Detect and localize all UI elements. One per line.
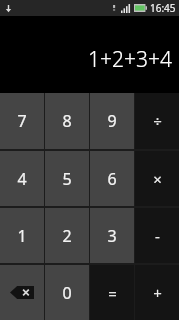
staticText: ÷: [153, 111, 162, 131]
staticText: =: [108, 283, 117, 303]
button[interactable]: =: [90, 265, 134, 320]
button[interactable]: 4: [0, 151, 44, 206]
staticText: 1: [17, 225, 27, 247]
staticText: 3: [107, 225, 117, 247]
button[interactable]: 8: [45, 93, 89, 149]
button[interactable]: 1: [0, 208, 44, 263]
button[interactable]: 9: [90, 93, 134, 149]
button[interactable]: Backspace: [0, 265, 44, 320]
button[interactable]: 5: [45, 151, 89, 206]
button[interactable]: 3: [90, 208, 134, 263]
button[interactable]: 0: [45, 265, 89, 320]
button[interactable]: 6: [90, 151, 134, 206]
staticText: 7: [17, 110, 27, 132]
staticText: 1+2+3+4: [88, 45, 172, 74]
button[interactable]: +: [135, 265, 179, 320]
staticText: 5: [62, 168, 72, 190]
button[interactable]: -: [135, 208, 179, 263]
button[interactable]: ×: [135, 151, 179, 206]
staticText: 4: [17, 168, 27, 190]
button[interactable]: 2: [45, 208, 89, 263]
staticText: 16:45: [150, 1, 176, 15]
button[interactable]: ÷: [135, 93, 179, 149]
staticText: 0: [62, 282, 72, 304]
staticText: 6: [107, 168, 117, 190]
staticText: 9: [107, 110, 117, 132]
button[interactable]: 7: [0, 93, 44, 149]
staticText: +: [153, 283, 162, 303]
staticText: ×: [153, 169, 162, 189]
staticText: -: [155, 226, 160, 246]
staticText: 2: [62, 225, 72, 247]
staticText: 8: [62, 110, 72, 132]
